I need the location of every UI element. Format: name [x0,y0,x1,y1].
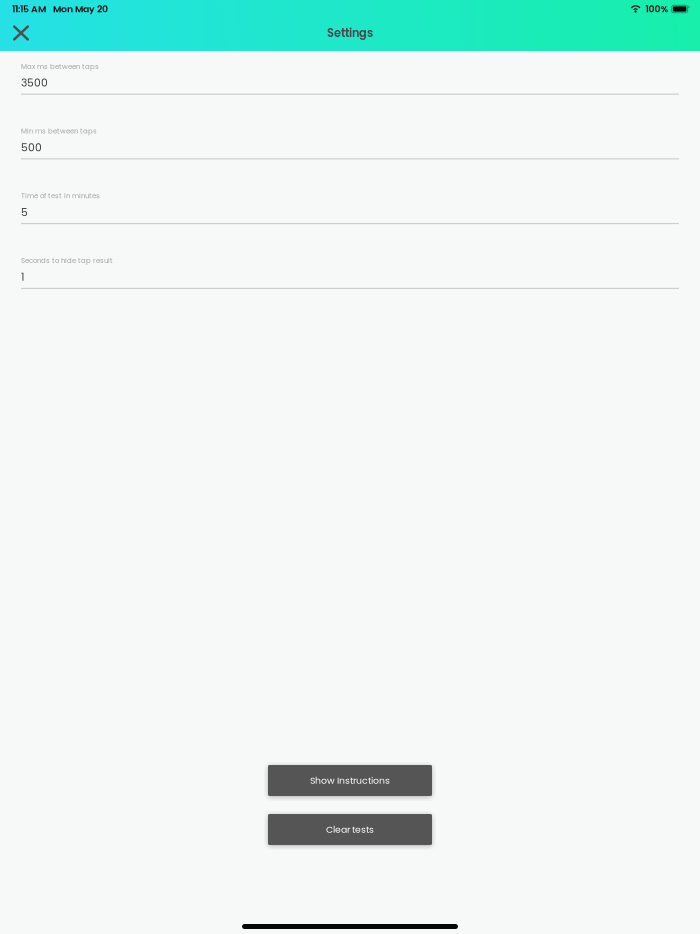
button[interactable]: Time of test in minutes [21,191,679,224]
staticText: Settings [327,25,373,41]
staticText: Clear tests [326,823,374,836]
button[interactable]: Show Instructions [268,765,432,796]
staticText: 1 [21,269,24,284]
button[interactable]: Max ms between taps [21,62,679,95]
button[interactable]: Close [0,17,40,47]
staticText: Min ms between taps [21,126,97,136]
staticText: 500 [21,140,42,155]
button[interactable]: Clear tests [268,814,432,845]
staticText: Mon May 20 [53,2,108,16]
button[interactable]: Seconds to hide tap result [21,256,679,289]
staticText: Seconds to hide tap result [21,256,113,265]
staticText: 5 [21,205,28,220]
staticText: Max ms between taps [21,62,99,71]
staticText: 3500 [21,75,48,90]
button[interactable]: Min ms between taps [21,126,679,159]
staticText: 11:15 AM [12,2,46,16]
staticText: Time of test in minutes [21,191,100,201]
staticText: Show Instructions [310,774,390,787]
staticText: 100% [646,2,669,16]
